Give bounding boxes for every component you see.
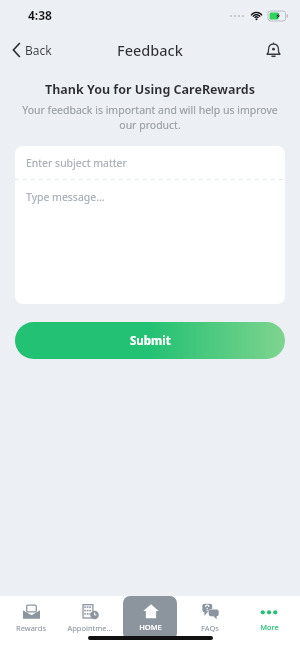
staticText: Type message... [26, 190, 105, 204]
staticText: More [260, 622, 279, 632]
staticText: Submit [130, 333, 171, 349]
button[interactable]: Enter subject matter [15, 146, 285, 179]
staticText: Enter subject matter [26, 156, 127, 170]
button[interactable]: FAQs [183, 596, 237, 640]
staticText: Thank You for Using CareRewards [0, 81, 300, 98]
staticText: Your feedback is important and will help… [22, 103, 278, 132]
button[interactable]: Type message... [15, 180, 285, 304]
button[interactable]: More [242, 596, 296, 640]
staticText: Appointme... [67, 623, 113, 633]
staticText: Rewards [16, 623, 46, 633]
staticText: Feedback [117, 40, 183, 60]
button[interactable]: Back [0, 36, 62, 64]
staticText: FAQs [201, 623, 219, 633]
staticText: 4:38 [28, 7, 52, 23]
button[interactable]: HOME [123, 596, 177, 640]
staticText: HOME [139, 622, 162, 632]
button[interactable]: Appointme... [63, 596, 117, 640]
button[interactable]: Submit [15, 322, 285, 359]
staticText: Back [25, 42, 52, 58]
button[interactable]: Notifications [260, 37, 286, 63]
button[interactable]: Rewards [4, 596, 58, 640]
